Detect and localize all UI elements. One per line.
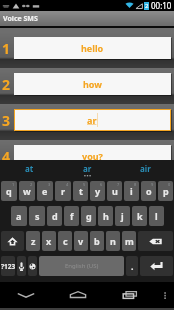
staticText: d [52, 210, 58, 222]
staticText: a [16, 210, 22, 222]
staticText: how [83, 78, 102, 90]
staticText: 1 [12, 182, 15, 187]
staticText: 2 [30, 182, 33, 187]
staticText: q [6, 185, 12, 197]
staticText: 6 [100, 182, 103, 187]
staticText: f [70, 210, 74, 222]
staticText: x [46, 235, 52, 247]
button[interactable]: ar [58, 160, 116, 180]
button[interactable]: r [55, 181, 71, 201]
button[interactable]: f [64, 206, 79, 226]
staticText: c [63, 235, 68, 247]
button[interactable]: o [141, 181, 156, 201]
button[interactable]: p [158, 181, 173, 201]
button[interactable]: x [42, 231, 56, 251]
staticText: k [137, 210, 143, 222]
staticText: 4 [66, 182, 69, 187]
staticText: 1 [2, 39, 11, 58]
staticText: l [155, 210, 158, 222]
button[interactable]: g [81, 206, 96, 226]
staticText: at [25, 163, 34, 174]
staticText: z [31, 235, 36, 247]
button[interactable]: s [29, 206, 45, 226]
staticText: p [163, 185, 169, 197]
staticText: 00:10 [151, 0, 172, 11]
staticText: ar [87, 114, 97, 126]
staticText: w [23, 185, 31, 197]
staticText: ar [83, 163, 92, 174]
staticText: hello [81, 42, 104, 54]
staticText: 3 [48, 182, 51, 187]
button[interactable]: Delete [138, 231, 173, 251]
staticText: n [110, 235, 116, 247]
button[interactable]: l [149, 206, 164, 226]
staticText: u [112, 185, 118, 197]
button[interactable]: q [1, 181, 17, 201]
staticText: . [131, 260, 134, 272]
button[interactable]: k [132, 206, 147, 226]
staticText: g [86, 210, 92, 222]
button[interactable]: English (US) [39, 256, 124, 276]
staticText: y [95, 185, 101, 197]
staticText: 2 [2, 75, 11, 94]
button[interactable]: Change language [28, 256, 37, 276]
button[interactable]: air [116, 160, 174, 180]
button[interactable]: c [58, 231, 72, 251]
button[interactable]: v [74, 231, 88, 251]
staticText: t [79, 185, 83, 197]
button[interactable]: ?123 [1, 256, 15, 276]
staticText: s [35, 210, 40, 222]
button[interactable]: y [90, 181, 105, 201]
staticText: ?123 [1, 262, 15, 271]
button[interactable]: Recent apps [104, 282, 156, 308]
button[interactable]: Voice input [17, 256, 26, 276]
button[interactable]: 4 [0, 140, 174, 160]
button[interactable]: 1 [0, 32, 174, 68]
staticText: 3 [2, 111, 11, 130]
staticText: b [94, 235, 100, 247]
staticText: o [146, 185, 152, 197]
button[interactable]: n [106, 231, 120, 251]
staticText: 4 [2, 147, 11, 160]
button[interactable]: h [98, 206, 113, 226]
staticText: r [61, 185, 66, 197]
staticText: 5 [83, 182, 86, 187]
button[interactable]: b [90, 231, 104, 251]
staticText: Voice SMS [3, 14, 38, 24]
button[interactable]: Shift [1, 231, 24, 251]
staticText: 7 [117, 182, 120, 187]
staticText: v [78, 235, 84, 247]
button[interactable]: d [47, 206, 62, 226]
staticText: m [125, 235, 134, 247]
button[interactable]: 2 [0, 68, 174, 104]
button[interactable]: u [107, 181, 122, 201]
button[interactable]: j [115, 206, 130, 226]
button[interactable]: 3 [0, 104, 174, 140]
staticText: j [121, 210, 124, 222]
staticText: e [42, 185, 48, 197]
button[interactable]: Home [52, 282, 104, 308]
staticText: 9 [151, 182, 154, 187]
button[interactable]: z [26, 231, 40, 251]
staticText: 2 [145, 2, 149, 10]
button[interactable]: Back [0, 282, 52, 308]
staticText: you? [82, 150, 103, 160]
button[interactable]: i [124, 181, 139, 201]
button[interactable]: . [126, 256, 138, 276]
button[interactable]: w [19, 181, 35, 201]
button[interactable]: More options [156, 282, 174, 308]
staticText: English (US) [65, 262, 99, 270]
button[interactable]: at [0, 160, 58, 180]
button[interactable]: t [73, 181, 88, 201]
staticText: 0 [168, 182, 171, 187]
staticText: i [130, 185, 133, 197]
button[interactable]: Enter [140, 256, 173, 276]
staticText: h [103, 210, 109, 222]
button[interactable]: e [37, 181, 53, 201]
button[interactable]: a [11, 206, 27, 226]
button[interactable]: m [122, 231, 136, 251]
staticText: 8 [134, 182, 137, 187]
staticText: air [140, 163, 151, 174]
